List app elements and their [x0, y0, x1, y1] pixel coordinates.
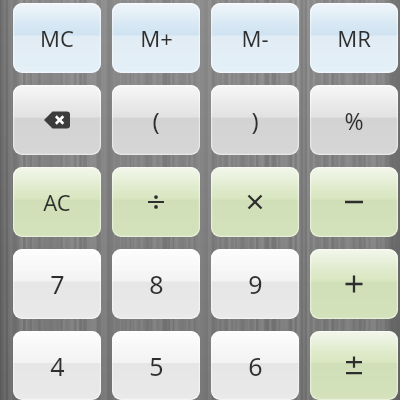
- button[interactable]: Multiply: [211, 167, 299, 237]
- staticText: 9: [248, 267, 263, 301]
- button[interactable]: M+: [112, 3, 200, 73]
- staticText: 7: [50, 267, 65, 301]
- button[interactable]: Divide: [112, 167, 200, 237]
- button[interactable]: MC: [13, 3, 101, 73]
- button[interactable]: Add: [310, 249, 398, 319]
- staticText: %: [344, 105, 364, 136]
- staticText: MR: [337, 23, 371, 53]
- button[interactable]: Plus or minus: [310, 331, 398, 400]
- button[interactable]: MR: [310, 3, 398, 73]
- button[interactable]: ): [211, 85, 299, 155]
- staticText: (: [152, 104, 160, 137]
- staticText: 6: [248, 349, 263, 383]
- button[interactable]: %: [310, 85, 398, 155]
- staticText: M+: [140, 23, 173, 53]
- button[interactable]: 6: [211, 331, 299, 400]
- button[interactable]: 9: [211, 249, 299, 319]
- button[interactable]: AC: [13, 167, 101, 237]
- staticText: AC: [43, 187, 71, 217]
- button[interactable]: M-: [211, 3, 299, 73]
- staticText: ): [251, 104, 259, 137]
- button[interactable]: Subtract: [310, 167, 398, 237]
- button[interactable]: 5: [112, 331, 200, 400]
- button[interactable]: 4: [13, 331, 101, 400]
- button[interactable]: 8: [112, 249, 200, 319]
- button[interactable]: Backspace: [13, 85, 101, 155]
- staticText: 4: [50, 349, 65, 383]
- button[interactable]: 7: [13, 249, 101, 319]
- button[interactable]: (: [112, 85, 200, 155]
- staticText: M-: [241, 23, 269, 53]
- staticText: MC: [40, 23, 74, 53]
- staticText: 8: [149, 267, 164, 301]
- staticText: 5: [149, 349, 164, 383]
